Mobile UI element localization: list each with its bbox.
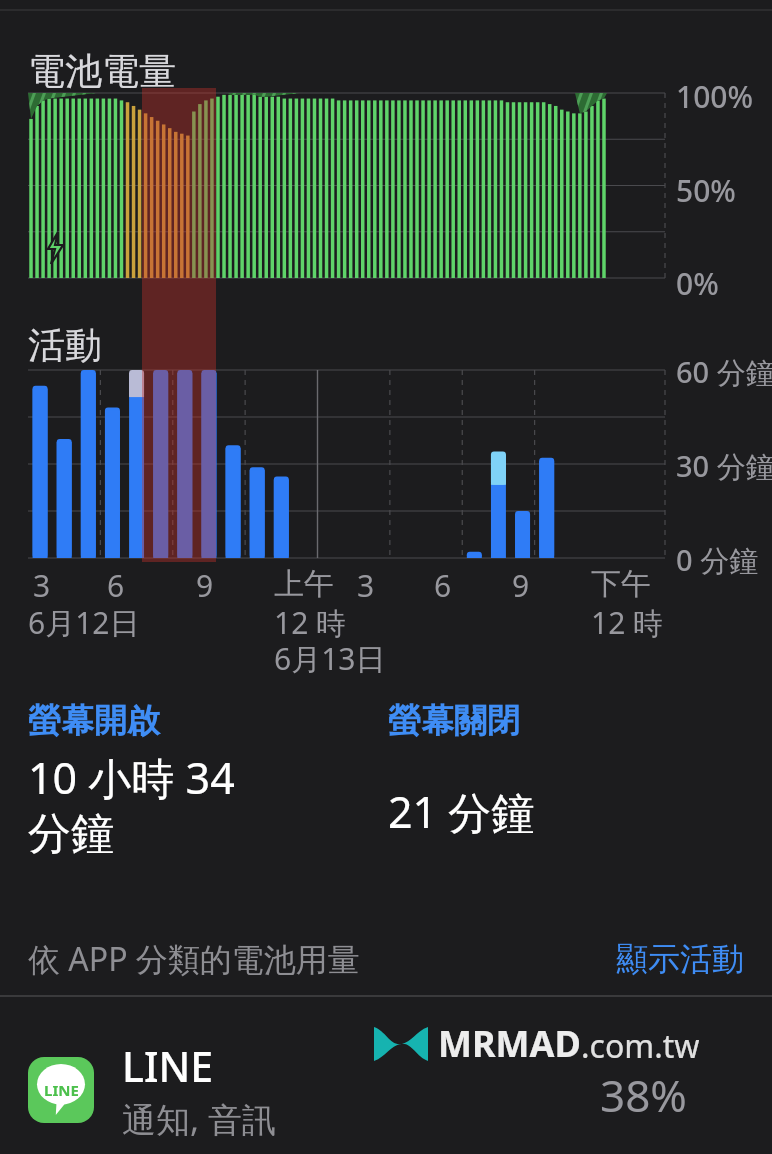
staticText: 上午 [274,565,334,603]
staticText: 螢幕關閉 [388,700,520,742]
staticText: 100% [676,76,754,117]
staticText: 6月13日 [274,638,386,679]
staticText: 螢幕開啟 [28,700,160,742]
button[interactable]: 顯示活動 [616,939,744,979]
staticText: 分鐘 [28,807,114,861]
staticText: 依 APP 分類的電池用量 [28,937,360,981]
staticText: 3 [33,565,51,606]
staticText: 30 分鐘 [676,446,772,486]
staticText: 12 時 [591,602,664,643]
staticText: 38% [600,1065,687,1125]
staticText: 電池電量 [28,48,176,95]
staticText: 活動 [28,322,102,369]
staticText: LINE [44,1080,79,1100]
staticText: 通知, 音訊 [122,1096,276,1142]
staticText: 0% [676,263,719,304]
button[interactable]: 螢幕開啟 [28,700,298,861]
staticText: 60 分鐘 [676,352,772,392]
staticText: 9 [196,565,214,606]
staticText: 10 小時 34 [28,748,235,807]
staticText: 下午 [591,565,651,603]
staticText: 顯示活動 [616,939,744,979]
staticText: 6月12日 [28,602,140,643]
button[interactable]: 螢幕關閉 [388,700,688,841]
staticText: 50% [676,170,736,211]
staticText: 0 分鐘 [676,540,759,580]
staticText: 6 [434,565,452,606]
button[interactable]: LINE [0,1030,772,1150]
staticText: 12 時 [274,602,347,643]
staticText: LINE [122,1038,214,1094]
staticText: 3 [357,565,375,606]
staticText: 6 [107,565,125,606]
staticText: .com.tw [581,1024,700,1068]
staticText: 9 [512,565,530,606]
staticText: MRMAD [438,1019,581,1068]
staticText: 21 分鐘 [388,782,535,841]
